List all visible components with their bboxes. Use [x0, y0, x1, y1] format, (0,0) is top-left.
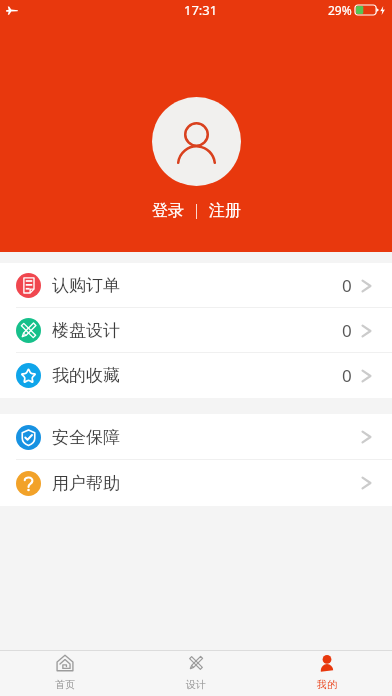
button[interactable]: 我的收藏	[0, 353, 392, 398]
staticText: 认购订单	[52, 275, 120, 296]
button[interactable]: 首页	[0, 651, 130, 696]
staticText: 17:31	[184, 1, 218, 19]
staticText: 登录	[152, 201, 184, 221]
staticText: 楼盘设计	[52, 320, 120, 341]
button[interactable]: 设计	[130, 651, 261, 696]
button[interactable]: 楼盘设计	[0, 308, 392, 353]
staticText: 0	[342, 319, 352, 342]
button[interactable]: 用户帮助	[0, 460, 392, 506]
staticText: 我的	[317, 678, 337, 691]
button[interactable]: 认购订单	[0, 263, 392, 308]
button[interactable]: 安全保障	[0, 414, 392, 460]
staticText: 0	[342, 364, 352, 387]
button[interactable]: 注册	[206, 198, 244, 224]
button[interactable]: 登录	[149, 198, 187, 224]
staticText: 首页	[55, 678, 75, 691]
button[interactable]: Avatar	[152, 97, 241, 186]
staticText: 0	[342, 274, 352, 297]
staticText: 注册	[209, 201, 241, 221]
button[interactable]: 我的	[261, 651, 392, 696]
staticText: 安全保障	[52, 427, 120, 448]
staticText: 用户帮助	[52, 473, 120, 494]
staticText: 我的收藏	[52, 365, 120, 386]
staticText: 设计	[186, 678, 206, 691]
staticText: 29%	[328, 2, 352, 18]
